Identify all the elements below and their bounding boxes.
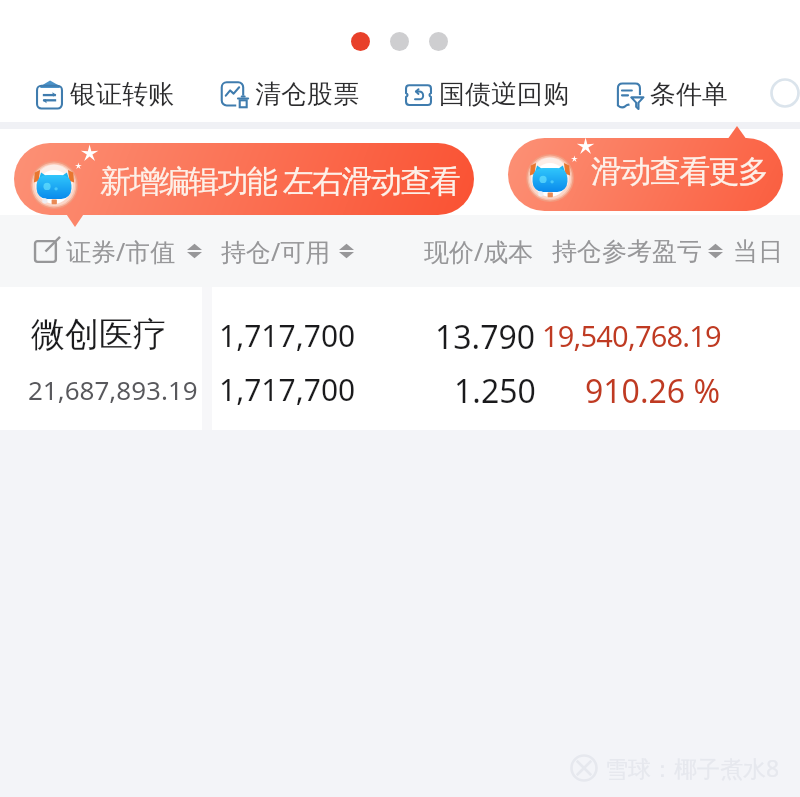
staticText: 雪球：椰子煮水8 [605, 752, 780, 783]
staticText: 持仓/可用 [221, 234, 331, 268]
staticText: 条件单 [650, 78, 728, 111]
staticText: 新增编辑功能 左右滑动查看 [100, 159, 460, 201]
button[interactable]: 新增编辑功能 左右滑动查看 [14, 143, 474, 237]
staticText: 证券/市值 [66, 234, 176, 268]
button[interactable]: 滑动查看更多 [508, 118, 783, 211]
staticText: 910.26 % [585, 369, 721, 413]
staticText: 微创医疗 [31, 313, 167, 356]
button[interactable]: 清仓股票 [210, 72, 369, 116]
button[interactable]: 银证转账 [25, 72, 184, 116]
staticText: 1,717,700 [219, 369, 356, 410]
staticText: 国债逆回购 [439, 78, 569, 111]
staticText: 1,717,700 [219, 315, 356, 356]
staticText: 1.250 [454, 369, 536, 413]
staticText: 19,540,768.19 [542, 316, 721, 355]
staticText: 清仓股票 [255, 78, 359, 111]
button[interactable]: More [770, 78, 800, 108]
staticText: 滑动查看更多 [591, 152, 768, 191]
staticText: 银证转账 [70, 78, 174, 111]
staticText: 当日 [733, 236, 783, 267]
button[interactable]: 条件单 [605, 72, 738, 116]
staticText: 现价/成本 [424, 234, 534, 268]
staticText: 13.790 [435, 315, 536, 359]
button[interactable]: 微创医疗 [0, 287, 800, 430]
staticText: 21,687,893.19 [28, 372, 198, 407]
button[interactable]: 国债逆回购 [394, 72, 579, 116]
button[interactable]: Edit [34, 238, 60, 264]
staticText: 持仓参考盈亏 [552, 236, 702, 267]
